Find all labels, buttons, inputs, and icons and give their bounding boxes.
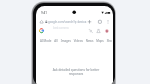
button[interactable]: New tab <box>87 19 93 25</box>
button[interactable] <box>45 19 87 25</box>
button[interactable]: Search by image <box>88 28 93 34</box>
button[interactable]: Google Account <box>104 28 110 34</box>
button[interactable]: Switch tabs <box>97 19 103 25</box>
staticText: AI Mode All Images Videos News Maps Sho <box>40 39 112 43</box>
staticText: best camera <box>53 26 69 30</box>
button[interactable]: Home <box>39 19 45 25</box>
button[interactable]: Labs <box>96 28 101 34</box>
staticText: 9:41 <box>41 11 47 15</box>
staticText: Ask detailed questions for better respon… <box>46 68 106 78</box>
button[interactable]: More options <box>105 19 111 25</box>
staticText: google.com/search?q=bestca <box>48 20 87 24</box>
button[interactable]: AI Mode All Images Videos News Maps Sho <box>38 38 113 43</box>
